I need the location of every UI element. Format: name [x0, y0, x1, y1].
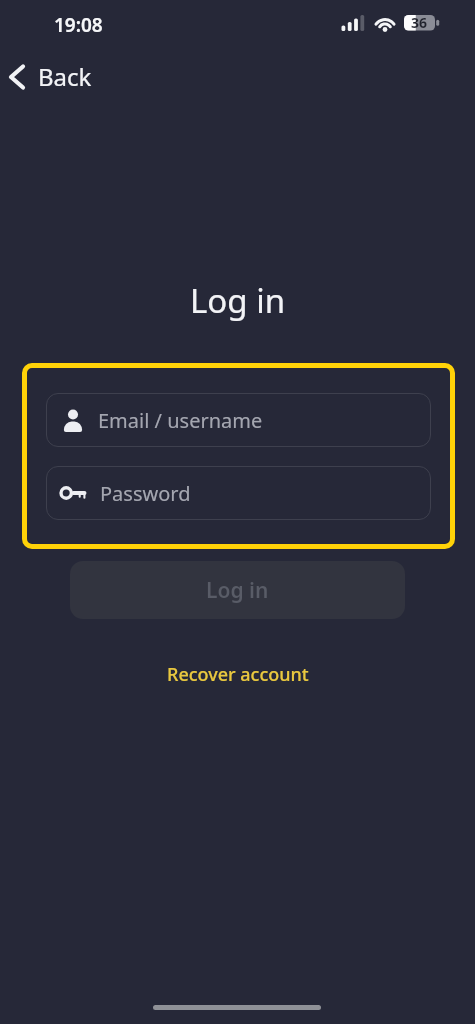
staticText: 19:08	[54, 12, 103, 38]
staticText: Log in	[206, 576, 269, 605]
button[interactable]: Email / username	[46, 393, 431, 447]
staticText: Back	[38, 60, 92, 93]
staticText: Recover account	[167, 662, 309, 687]
staticText: Password	[100, 480, 191, 507]
button[interactable]: Back	[2, 56, 96, 97]
button[interactable]: Password	[46, 466, 431, 520]
staticText: Log in	[190, 278, 286, 323]
button[interactable]: Recover account	[159, 658, 317, 691]
staticText: Email / username	[98, 407, 263, 434]
staticText: 36	[411, 13, 428, 32]
button[interactable]: Log in	[70, 561, 405, 619]
